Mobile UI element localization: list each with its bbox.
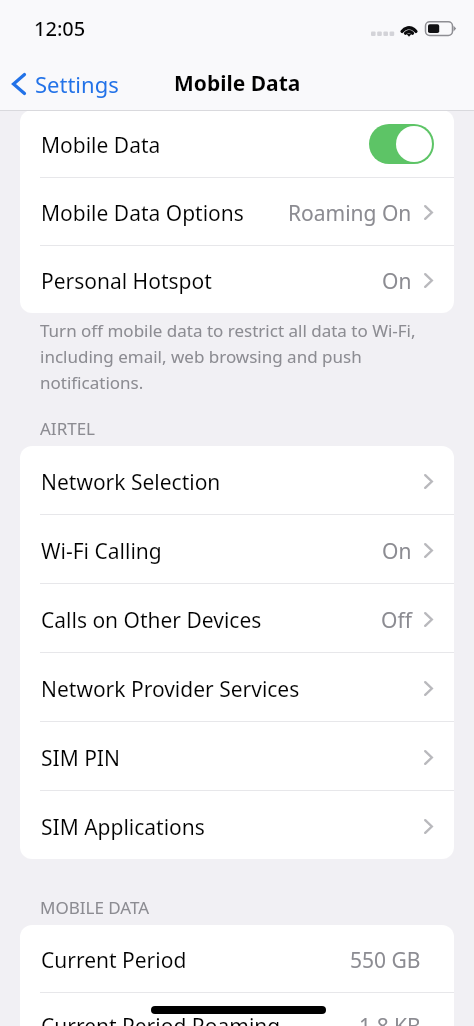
staticText: On <box>382 267 412 296</box>
button[interactable]: Calls on Other Devices <box>20 584 454 652</box>
staticText: Settings <box>35 69 119 99</box>
button[interactable]: Network Provider Services <box>20 653 454 721</box>
staticText: Calls on Other Devices <box>41 606 262 635</box>
button[interactable]: Wi-Fi Calling <box>20 515 454 583</box>
staticText: MOBILE DATA <box>40 896 150 919</box>
staticText: SIM PIN <box>41 744 120 773</box>
button[interactable]: Mobile Data Options <box>20 178 454 245</box>
staticText: 1.8 KB <box>359 1012 421 1026</box>
staticText: Off <box>381 606 412 635</box>
staticText: 550 GB <box>350 946 421 975</box>
button[interactable]: Network Selection <box>20 446 454 514</box>
staticText: Roaming On <box>288 199 412 228</box>
button[interactable]: Mobile Data <box>20 110 454 177</box>
button[interactable]: Current Period Roaming <box>20 993 454 1026</box>
staticText: Network Selection <box>41 468 221 497</box>
button[interactable]: SIM PIN <box>20 722 454 790</box>
button[interactable]: Current Period <box>20 925 454 992</box>
staticText: On <box>382 537 412 566</box>
button[interactable]: SIM Applications <box>20 791 454 859</box>
staticText: Network Provider Services <box>41 675 300 704</box>
staticText: SIM Applications <box>41 813 205 842</box>
staticText: Mobile Data Options <box>41 199 244 228</box>
staticText: AIRTEL <box>40 417 96 440</box>
staticText: Current Period <box>41 946 187 975</box>
button[interactable]: Personal Hotspot <box>20 246 454 313</box>
button[interactable]: Mobile Data on <box>369 124 434 164</box>
staticText: Current Period Roaming <box>41 1012 281 1026</box>
staticText: Wi-Fi Calling <box>41 537 162 566</box>
staticText: Mobile Data <box>41 131 161 160</box>
staticText: Mobile Data <box>174 69 301 98</box>
button[interactable]: Settings <box>0 69 133 99</box>
staticText: Turn off mobile data to restrict all dat… <box>40 319 416 394</box>
staticText: 12:05 <box>34 15 86 42</box>
staticText: Personal Hotspot <box>41 267 212 296</box>
